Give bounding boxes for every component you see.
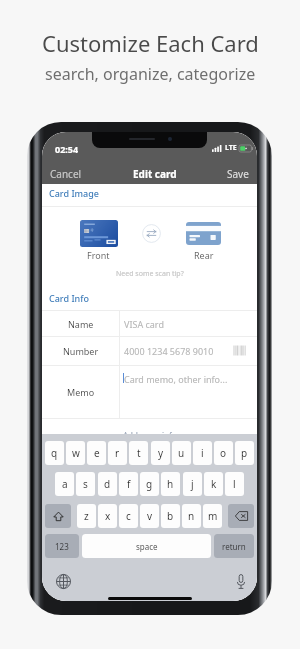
button[interactable]: return	[214, 534, 254, 558]
button[interactable]: Number	[42, 336, 257, 365]
staticText: p	[241, 446, 248, 460]
staticText: Add more info	[123, 430, 177, 441]
staticText: Cancel	[50, 167, 82, 181]
staticText: space	[136, 541, 158, 552]
staticText: r	[115, 446, 120, 460]
staticText: u	[178, 446, 185, 460]
button[interactable]: Shift	[45, 504, 71, 528]
staticText: l	[233, 477, 236, 491]
button[interactable]: v	[140, 504, 159, 528]
button[interactable]: h	[161, 472, 180, 496]
button[interactable]: o	[214, 441, 233, 465]
staticText: z	[84, 509, 89, 523]
staticText: k	[211, 477, 217, 491]
button[interactable]: m	[203, 504, 222, 528]
staticText: f	[127, 477, 131, 491]
staticText: n	[188, 509, 195, 523]
button[interactable]: Name	[42, 311, 257, 336]
staticText: b	[167, 509, 174, 523]
staticText: 4000 1234 5678 9010	[124, 345, 214, 357]
button[interactable]: d	[98, 472, 117, 496]
staticText: return	[222, 541, 246, 552]
staticText: Number	[63, 345, 99, 357]
button[interactable]: Rear card image	[186, 222, 221, 245]
staticText: Need some scan tip?	[116, 269, 184, 279]
button[interactable]: y	[151, 441, 170, 465]
button[interactable]: g	[140, 472, 159, 496]
button[interactable]: x	[98, 504, 117, 528]
button[interactable]: space	[82, 534, 211, 558]
button[interactable]: k	[204, 472, 223, 496]
staticText: Card memo, other info...	[124, 373, 228, 385]
staticText: search, organize, categorize	[45, 63, 256, 85]
button[interactable]: Change keyboard	[54, 572, 73, 591]
button[interactable]: Cancel	[42, 167, 88, 181]
staticText: d	[104, 477, 111, 491]
button[interactable]: n	[182, 504, 201, 528]
button[interactable]: q	[45, 441, 64, 465]
button[interactable]: c	[119, 504, 138, 528]
staticText: w	[72, 446, 80, 460]
button[interactable]: Save	[221, 167, 257, 181]
button[interactable]: w	[66, 441, 85, 465]
button[interactable]: r	[108, 441, 127, 465]
staticText: o	[220, 446, 227, 460]
staticText: VISA card	[124, 318, 164, 330]
staticText: h	[167, 477, 174, 491]
staticText: v	[147, 509, 153, 523]
button[interactable]: Swap front and rear	[141, 223, 161, 243]
staticText: i	[201, 446, 204, 460]
staticText: m	[208, 509, 218, 523]
staticText: e	[94, 446, 100, 460]
button[interactable]: Scan card number	[233, 345, 246, 356]
button[interactable]: j	[183, 472, 202, 496]
staticText: t	[137, 446, 141, 460]
button[interactable]: a	[55, 472, 74, 496]
staticText: j	[191, 477, 194, 491]
staticText: Rear	[194, 249, 214, 261]
button[interactable]: i	[193, 441, 212, 465]
staticText: LTE	[225, 143, 237, 153]
staticText: Save	[227, 167, 249, 181]
staticText: 02:54	[55, 143, 79, 155]
staticText: Name	[68, 318, 94, 330]
button[interactable]: f	[119, 472, 138, 496]
button[interactable]: Dictate	[231, 572, 250, 591]
button[interactable]: b	[161, 504, 180, 528]
button[interactable]: Memo	[42, 365, 257, 418]
staticText: s	[83, 477, 88, 491]
staticText: a	[62, 477, 68, 491]
staticText: c	[126, 509, 131, 523]
button[interactable]: t	[129, 441, 148, 465]
button[interactable]: u	[172, 441, 191, 465]
staticText: q	[51, 446, 58, 460]
button[interactable]: e	[87, 441, 106, 465]
button[interactable]: z	[77, 504, 96, 528]
button[interactable]: 123	[45, 534, 79, 558]
button[interactable]: p	[235, 441, 254, 465]
staticText: x	[105, 509, 111, 523]
button[interactable]: Front card image	[80, 220, 118, 247]
staticText: Card Image	[49, 187, 100, 199]
staticText: Customize Each Card	[42, 28, 259, 58]
button[interactable]: s	[76, 472, 95, 496]
staticText: 123	[55, 541, 69, 552]
staticText: y	[158, 446, 164, 460]
button[interactable]: Backspace	[228, 504, 254, 528]
button[interactable]: l	[225, 472, 244, 496]
staticText: Front	[87, 249, 110, 261]
staticText: g	[146, 477, 153, 491]
staticText: Edit card	[133, 167, 177, 181]
staticText: Card Info	[49, 292, 89, 304]
staticText: Memo	[67, 386, 95, 398]
